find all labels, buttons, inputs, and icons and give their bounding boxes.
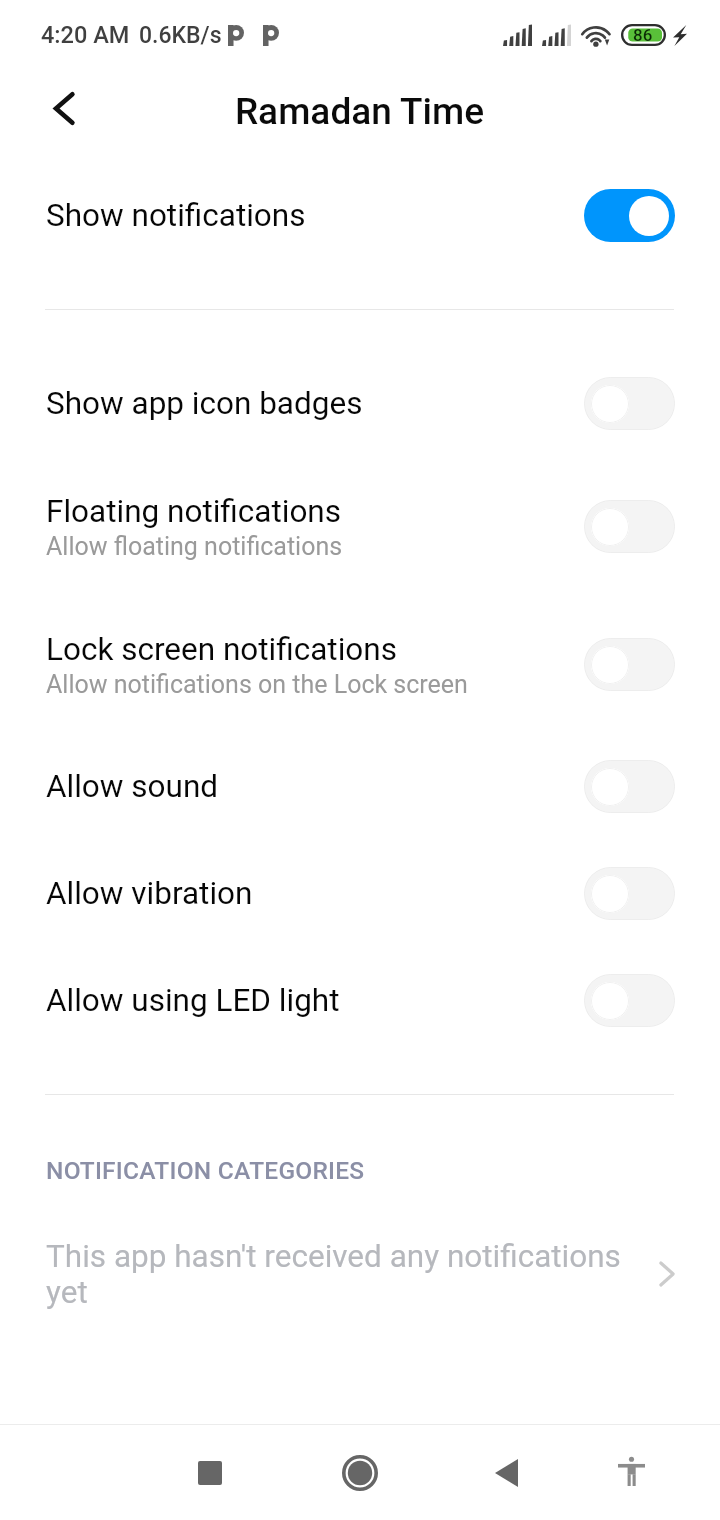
staticText: Ramadan Time — [235, 90, 485, 133]
button[interactable]: Allow vibration — [0, 850, 720, 936]
button[interactable]: Floating notifications — [0, 474, 720, 578]
button[interactable]: NOTIFICATION CATEGORIES — [0, 1146, 720, 1194]
button[interactable]: Back — [462, 1425, 550, 1520]
staticText: 86 — [633, 25, 653, 45]
button[interactable]: This app hasn't received any notificatio… — [0, 1238, 720, 1310]
staticText: Allow vibration — [46, 875, 253, 912]
staticText: Lock screen notifications — [46, 631, 397, 668]
button[interactable]: Lock screen notifications — [0, 612, 720, 716]
staticText: Allow floating notifications — [46, 532, 343, 561]
button[interactable]: Accessibility — [587, 1425, 675, 1520]
staticText: Floating notifications — [46, 493, 342, 530]
staticText: Show notifications — [46, 197, 306, 234]
button[interactable]: Home — [316, 1425, 404, 1520]
staticText: Allow notifications on the Lock screen — [46, 670, 468, 699]
staticText: Show app icon badges — [46, 385, 363, 422]
staticText: NOTIFICATION CATEGORIES — [46, 1156, 365, 1185]
button[interactable]: Show app icon badges — [0, 360, 720, 446]
button[interactable]: Show notifications — [0, 172, 720, 258]
button[interactable]: Allow sound — [0, 743, 720, 829]
staticText: Allow using LED light — [46, 982, 340, 1019]
staticText: 0.6KB/s — [139, 22, 222, 49]
button[interactable]: Recent apps — [166, 1425, 254, 1520]
staticText: Allow sound — [46, 768, 219, 805]
button[interactable]: Back — [28, 72, 100, 144]
button[interactable]: Allow using LED light — [0, 957, 720, 1043]
staticText: 4:20 AM — [41, 21, 130, 49]
staticText: This app hasn't received any notificatio… — [46, 1238, 621, 1310]
